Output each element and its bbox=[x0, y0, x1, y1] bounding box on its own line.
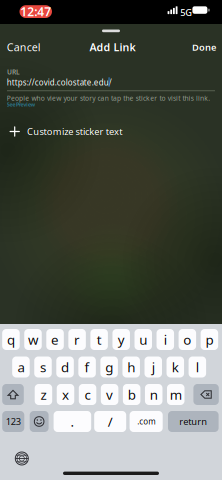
button[interactable]: g bbox=[100, 356, 118, 377]
button[interactable]: m bbox=[167, 384, 184, 405]
staticText: j bbox=[152, 358, 155, 376]
button[interactable]: Done bbox=[187, 35, 221, 59]
staticText: URL bbox=[7, 67, 20, 76]
staticText: q bbox=[7, 331, 15, 348]
staticText: s bbox=[40, 358, 46, 376]
staticText: t bbox=[97, 331, 102, 348]
staticText: b bbox=[128, 386, 136, 403]
button[interactable]: q bbox=[2, 329, 20, 350]
staticText: f bbox=[85, 358, 90, 376]
staticText: u bbox=[139, 331, 147, 348]
staticText: a bbox=[17, 358, 24, 376]
button[interactable]: o bbox=[179, 329, 196, 350]
button[interactable]: Delete bbox=[193, 384, 219, 405]
staticText: / bbox=[108, 413, 113, 430]
staticText: m bbox=[170, 386, 182, 403]
button[interactable]: e bbox=[46, 329, 64, 350]
staticText: v bbox=[106, 386, 113, 403]
staticText: Done bbox=[192, 41, 216, 53]
button[interactable]: Emoji bbox=[30, 411, 49, 432]
button[interactable]: b bbox=[123, 384, 140, 405]
button[interactable]: d bbox=[56, 356, 74, 377]
staticText: z bbox=[40, 386, 46, 403]
staticText: 12:47 bbox=[20, 4, 51, 19]
staticText: See Preview bbox=[7, 101, 35, 108]
button[interactable]: s bbox=[34, 356, 52, 377]
staticText: y bbox=[118, 331, 125, 348]
button[interactable]: n bbox=[145, 384, 162, 405]
button[interactable]: Cancel bbox=[2, 34, 46, 60]
button[interactable]: p bbox=[201, 329, 218, 350]
staticText: Add Link bbox=[89, 40, 135, 54]
button[interactable]: y bbox=[112, 329, 130, 350]
staticText: c bbox=[85, 386, 91, 403]
staticText: https://covid.colostate.edu/ bbox=[7, 77, 112, 88]
staticText: x bbox=[62, 386, 69, 403]
button[interactable]: 123 bbox=[2, 411, 24, 432]
button[interactable]: Next keyboard bbox=[12, 448, 32, 468]
button[interactable]: Add Link bbox=[84, 34, 140, 60]
button[interactable]: j bbox=[144, 356, 162, 377]
button[interactable]: i bbox=[156, 329, 174, 350]
button[interactable]: / bbox=[94, 411, 126, 432]
staticText: i bbox=[164, 331, 167, 348]
button[interactable]: h bbox=[122, 356, 140, 377]
button[interactable]: l bbox=[189, 356, 206, 377]
button[interactable]: x bbox=[57, 384, 74, 405]
button[interactable]: r bbox=[68, 329, 86, 350]
button[interactable]: a bbox=[12, 356, 30, 377]
staticText: People who view your story can tap the s… bbox=[7, 94, 210, 103]
staticText: g bbox=[105, 358, 113, 376]
button[interactable]: c bbox=[79, 384, 96, 405]
staticText: . bbox=[70, 413, 74, 430]
staticText: r bbox=[74, 331, 80, 348]
button[interactable]: k bbox=[166, 356, 184, 377]
staticText: 123 bbox=[6, 415, 21, 428]
staticText: Customize sticker text bbox=[27, 125, 122, 138]
staticText: w bbox=[28, 331, 38, 348]
staticText: Cancel bbox=[7, 40, 41, 54]
staticText: h bbox=[127, 358, 135, 376]
button[interactable]: w bbox=[24, 329, 42, 350]
button[interactable]: z bbox=[35, 384, 52, 405]
staticText: 5G bbox=[180, 6, 192, 19]
staticText: .com bbox=[137, 416, 155, 427]
staticText: l bbox=[196, 358, 199, 376]
button[interactable]: t bbox=[90, 329, 108, 350]
staticText: k bbox=[172, 358, 179, 376]
staticText: o bbox=[183, 331, 191, 348]
staticText: n bbox=[150, 386, 158, 403]
staticText: return bbox=[179, 415, 207, 428]
button[interactable]: .com bbox=[130, 411, 163, 432]
staticText: p bbox=[205, 331, 213, 348]
button[interactable]: return bbox=[168, 411, 219, 432]
staticText: e bbox=[51, 331, 59, 348]
button[interactable]: See Preview bbox=[5, 99, 36, 109]
button[interactable]: v bbox=[101, 384, 118, 405]
button[interactable]: f bbox=[78, 356, 96, 377]
button[interactable]: . bbox=[54, 411, 91, 432]
button[interactable]: u bbox=[134, 329, 152, 350]
staticText: d bbox=[61, 358, 69, 376]
button[interactable]: Customize sticker text bbox=[0, 119, 222, 144]
button[interactable]: Shift bbox=[2, 384, 24, 405]
